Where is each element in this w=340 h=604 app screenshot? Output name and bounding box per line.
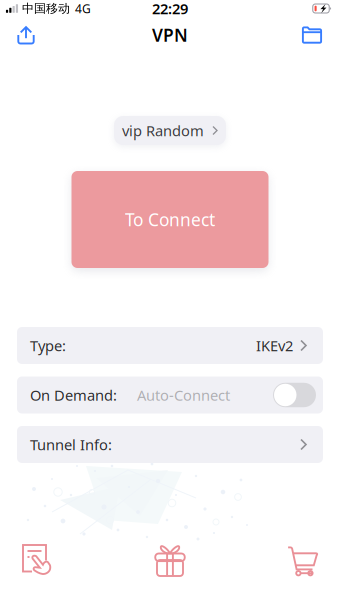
button[interactable]: Orders [0, 537, 76, 583]
staticText: Auto-Connect [137, 385, 230, 405]
staticText: Tunnel Info: [30, 435, 112, 454]
staticText: 4G [75, 0, 91, 16]
button[interactable]: Gifts [132, 537, 208, 583]
staticText: On Demand: [30, 385, 117, 405]
staticText: vip Random [122, 121, 204, 140]
button[interactable]: Folder [292, 17, 332, 53]
button[interactable]: Type: [17, 327, 323, 364]
staticText: 22:29 [152, 0, 188, 18]
staticText: IKEv2 [256, 336, 293, 355]
button[interactable]: Tunnel Info: [17, 426, 323, 463]
button[interactable]: To Connect [71, 171, 268, 268]
staticText: Type: [30, 336, 66, 355]
button[interactable]: Share [6, 17, 46, 53]
staticText: 中国移动 [22, 1, 70, 16]
button[interactable]: vip Random [114, 116, 226, 145]
button[interactable]: On Demand toggle [273, 383, 316, 407]
button[interactable]: Cart [264, 537, 340, 583]
staticText: VPN [152, 23, 188, 46]
staticText: To Connect [125, 208, 215, 231]
